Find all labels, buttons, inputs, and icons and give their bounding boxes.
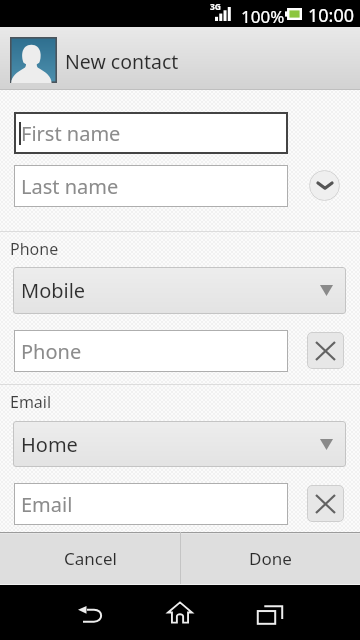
- staticText: 100%: [241, 5, 285, 28]
- button[interactable]: Delete Email: [307, 485, 344, 522]
- staticText: Email: [10, 391, 52, 413]
- staticText: Home: [21, 431, 78, 458]
- button[interactable]: Cancel: [0, 532, 180, 585]
- button[interactable]: Home: [135, 585, 225, 640]
- button[interactable]: Recent apps: [225, 585, 315, 640]
- staticText: Phone: [10, 238, 59, 260]
- button[interactable]: Home: [13, 421, 346, 467]
- staticText: Mobile: [21, 277, 86, 304]
- button[interactable]: First name: [14, 112, 288, 154]
- staticText: 3G: [210, 1, 222, 13]
- button[interactable]: Back: [45, 585, 135, 640]
- staticText: First name: [21, 120, 121, 147]
- button[interactable]: Expand name fields: [309, 170, 340, 201]
- button[interactable]: Mobile: [13, 267, 346, 314]
- button[interactable]: Last name: [14, 165, 288, 207]
- staticText: 10:00: [308, 3, 355, 28]
- button[interactable]: Done: [180, 532, 360, 585]
- staticText: Last name: [21, 173, 119, 200]
- staticText: Phone: [21, 338, 82, 365]
- staticText: New contact: [65, 48, 179, 75]
- button[interactable]: Phone: [14, 330, 288, 372]
- staticText: Email: [21, 491, 73, 518]
- staticText: Done: [249, 547, 292, 570]
- button[interactable]: Delete Phone: [307, 332, 344, 369]
- staticText: Cancel: [64, 547, 117, 570]
- button[interactable]: Email: [14, 483, 288, 525]
